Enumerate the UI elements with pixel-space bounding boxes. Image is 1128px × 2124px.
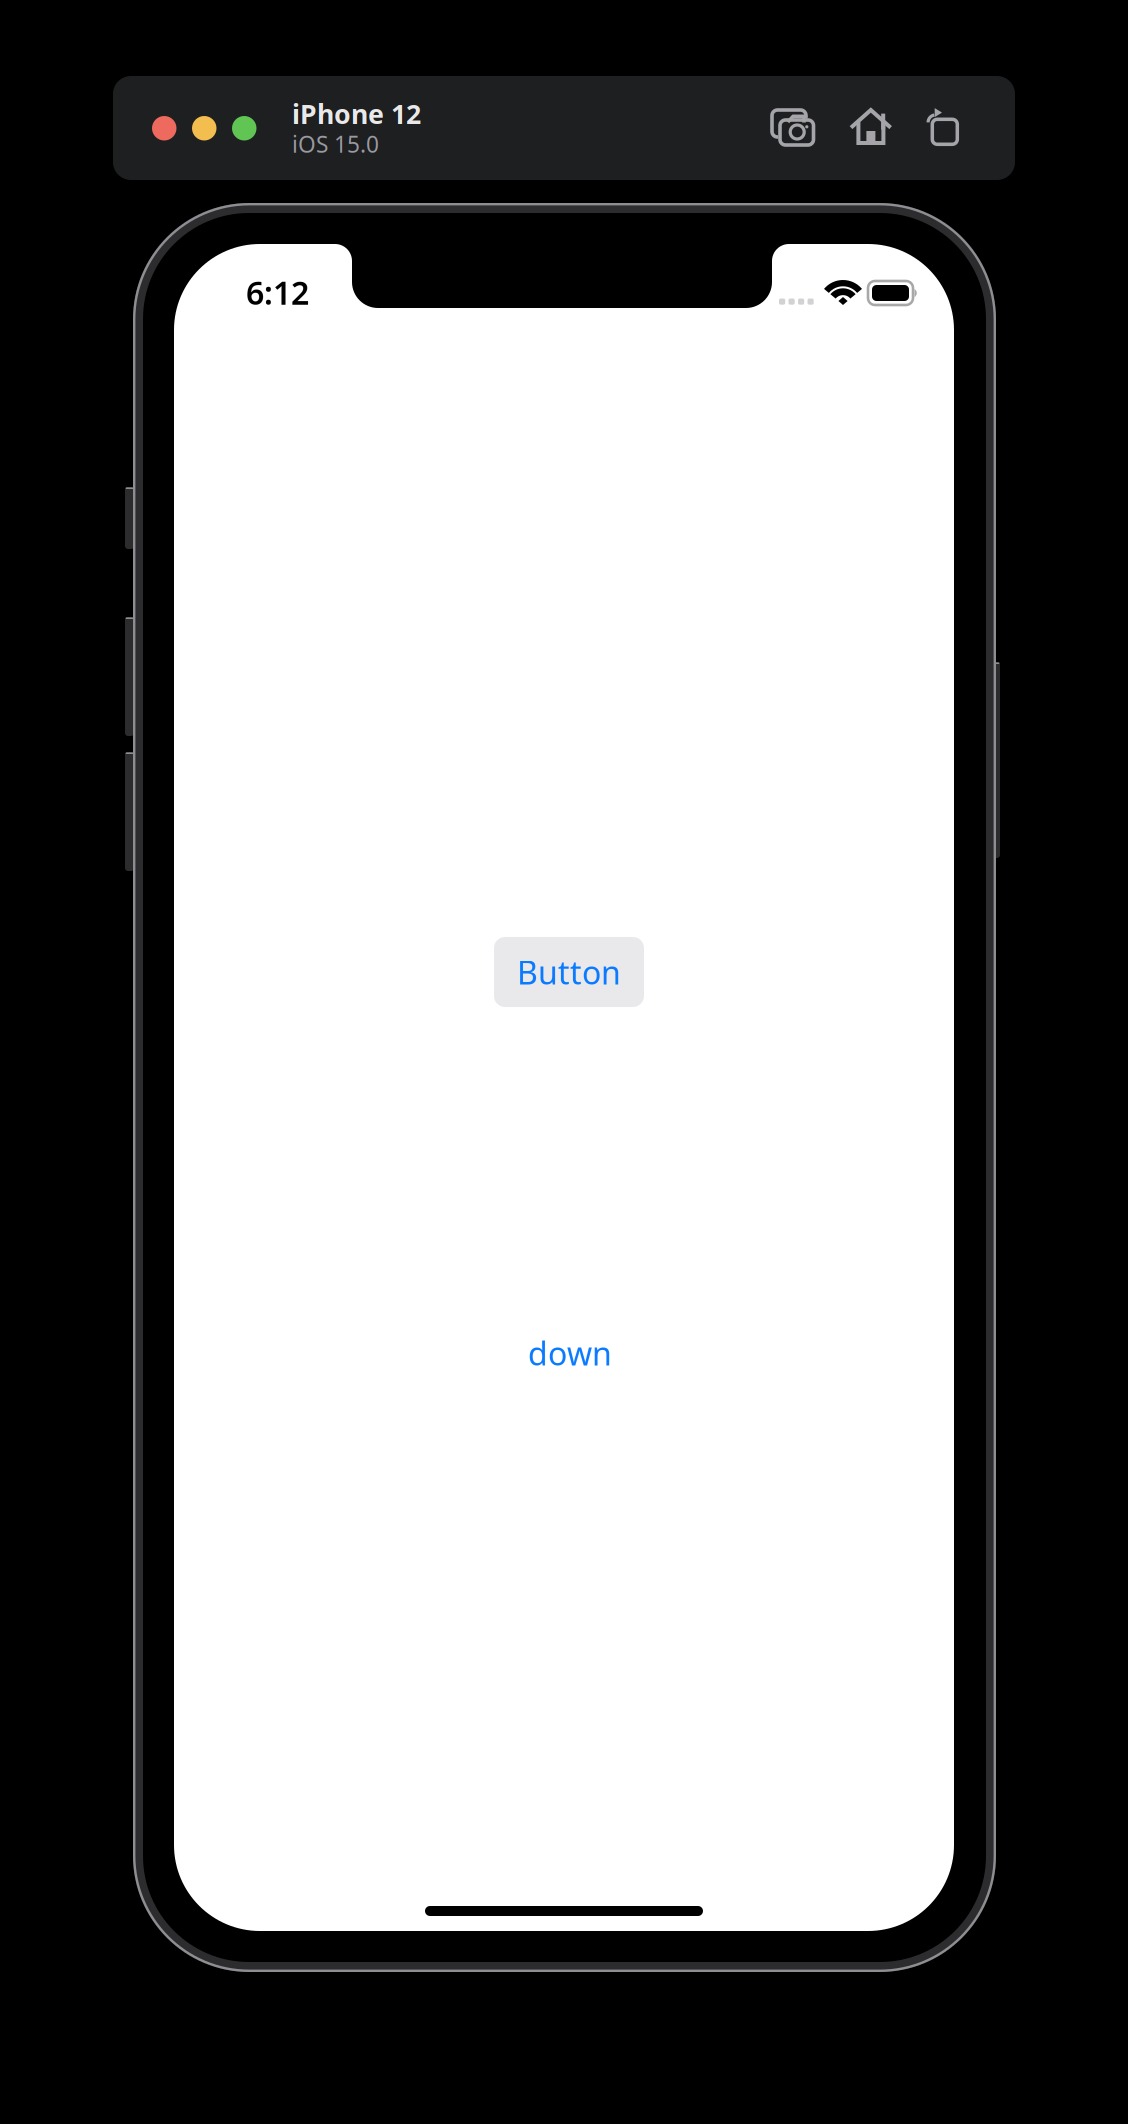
button[interactable]: Minimize xyxy=(192,116,216,140)
staticText: Button xyxy=(517,951,621,993)
button[interactable]: Close xyxy=(152,116,176,140)
staticText: iPhone 12 xyxy=(292,96,421,131)
button[interactable]: Rotate xyxy=(927,107,958,145)
button[interactable]: Home xyxy=(851,110,891,146)
button[interactable]: Screenshot xyxy=(772,110,814,146)
button[interactable]: Full Screen xyxy=(232,116,256,140)
button[interactable]: Button xyxy=(494,937,644,1007)
staticText: down xyxy=(528,1332,612,1374)
staticText: 6:12 xyxy=(246,271,309,313)
staticText: iOS 15.0 xyxy=(292,129,379,159)
